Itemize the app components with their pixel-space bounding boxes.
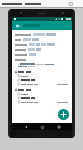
button[interactable] [18,74,69,78]
button[interactable]: Home [39,124,45,130]
button[interactable] [15,70,69,74]
button[interactable] [15,42,69,47]
button[interactable] [18,92,69,96]
button[interactable]: Back [14,22,21,29]
button[interactable] [15,37,69,42]
button[interactable]: Recent apps [56,124,62,130]
button[interactable] [15,32,69,37]
button[interactable] [18,96,69,100]
button[interactable]: Back [23,124,29,130]
button[interactable] [15,88,69,92]
button[interactable] [18,82,69,86]
button[interactable] [15,52,69,57]
button[interactable] [18,100,69,104]
button[interactable]: Add [58,109,69,120]
button[interactable] [15,47,69,52]
button[interactable] [18,78,69,82]
